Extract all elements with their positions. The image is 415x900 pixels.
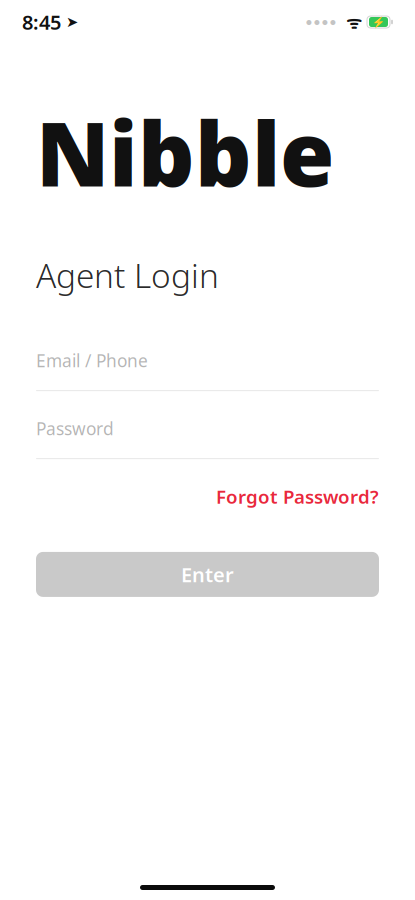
staticText: Agent Login	[36, 253, 219, 297]
staticText: Password	[36, 417, 114, 440]
staticText: ᯤ	[336, 10, 367, 33]
staticText: 8:45	[22, 9, 61, 35]
staticText: Nibble	[36, 94, 334, 211]
button[interactable]: Forgot Password?	[216, 479, 379, 514]
staticText: ➤	[61, 14, 78, 30]
button[interactable]: Enter	[36, 552, 379, 597]
staticText: Email / Phone	[36, 349, 148, 372]
staticText: ● ● ● ●	[306, 18, 336, 26]
staticText: Forgot Password?	[216, 484, 379, 509]
staticText: Enter	[181, 561, 234, 588]
staticText: ⚡	[372, 16, 385, 28]
